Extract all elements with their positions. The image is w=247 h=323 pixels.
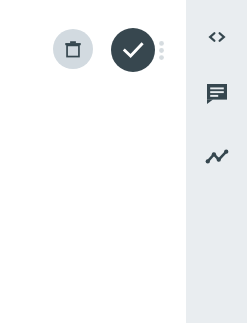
button[interactable]: Analytics: [200, 140, 233, 173]
button[interactable]: Messages: [200, 77, 233, 110]
button[interactable]: More options: [152, 35, 170, 65]
button[interactable]: Confirm: [111, 28, 155, 72]
button[interactable]: Code: [200, 20, 233, 53]
button[interactable]: Delete: [53, 29, 93, 69]
